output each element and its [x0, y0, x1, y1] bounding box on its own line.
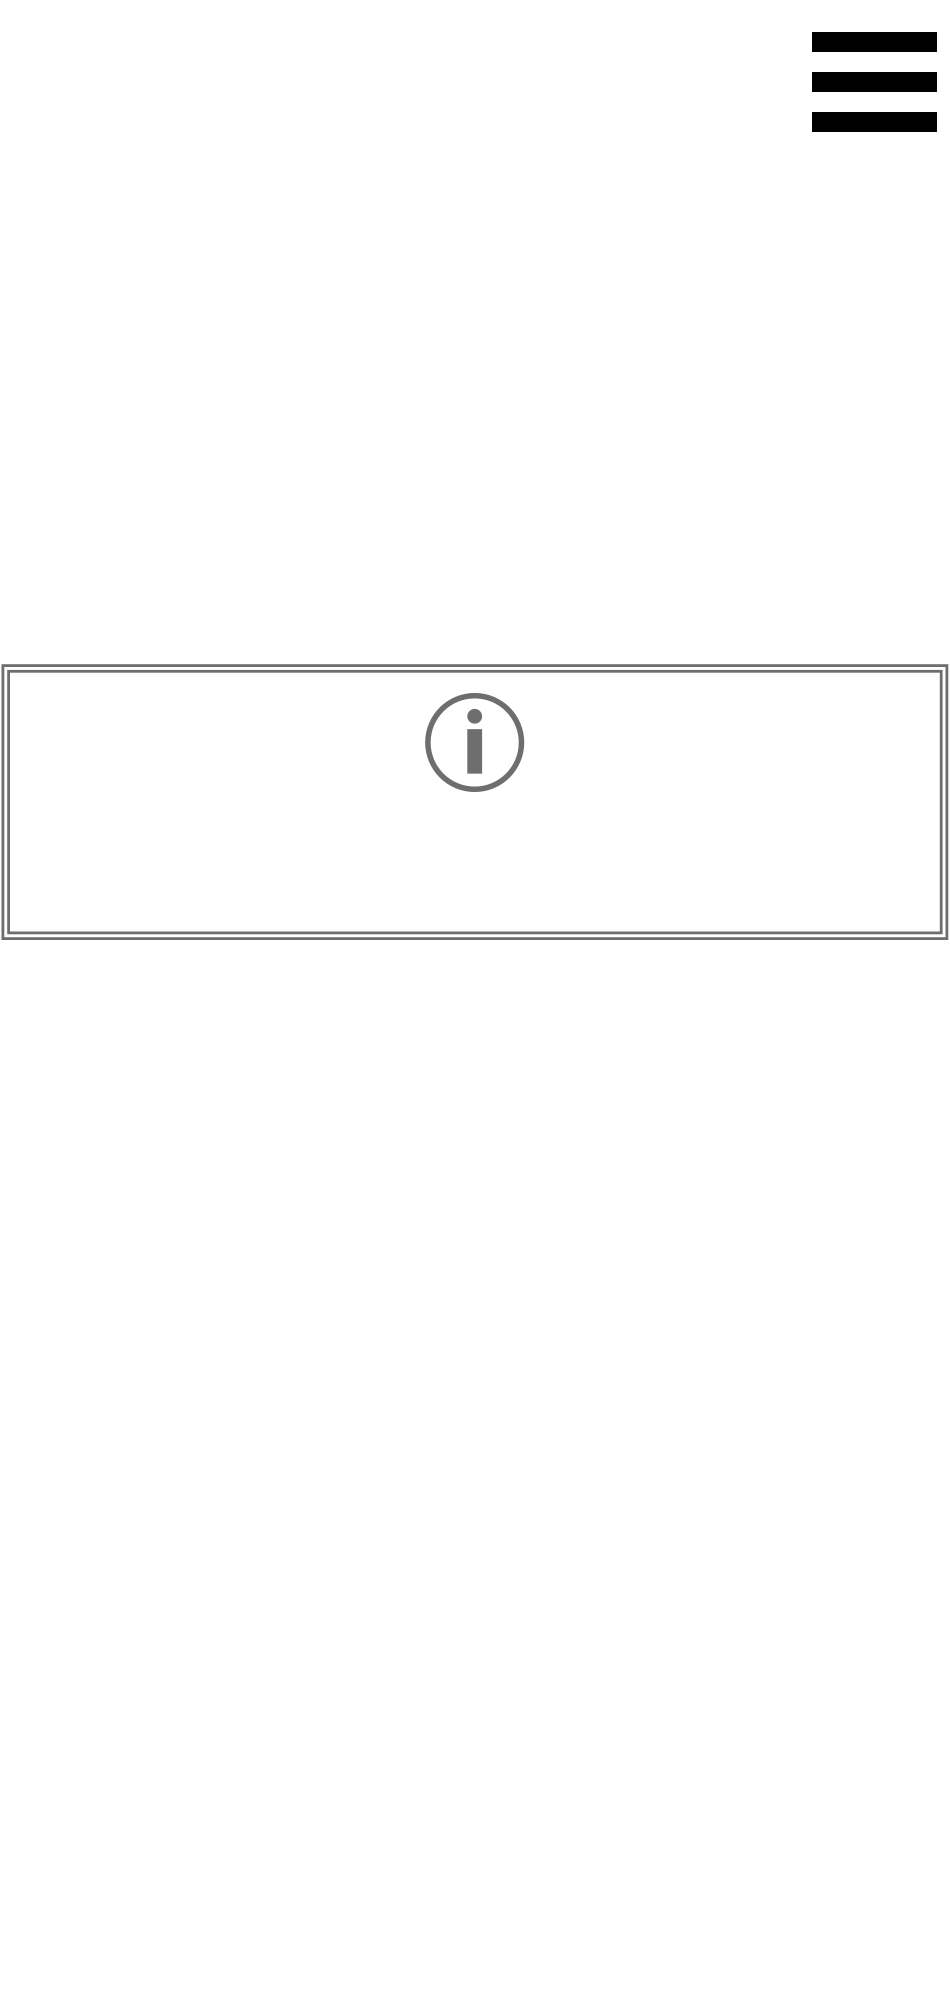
button[interactable]: Menu [812, 32, 937, 132]
